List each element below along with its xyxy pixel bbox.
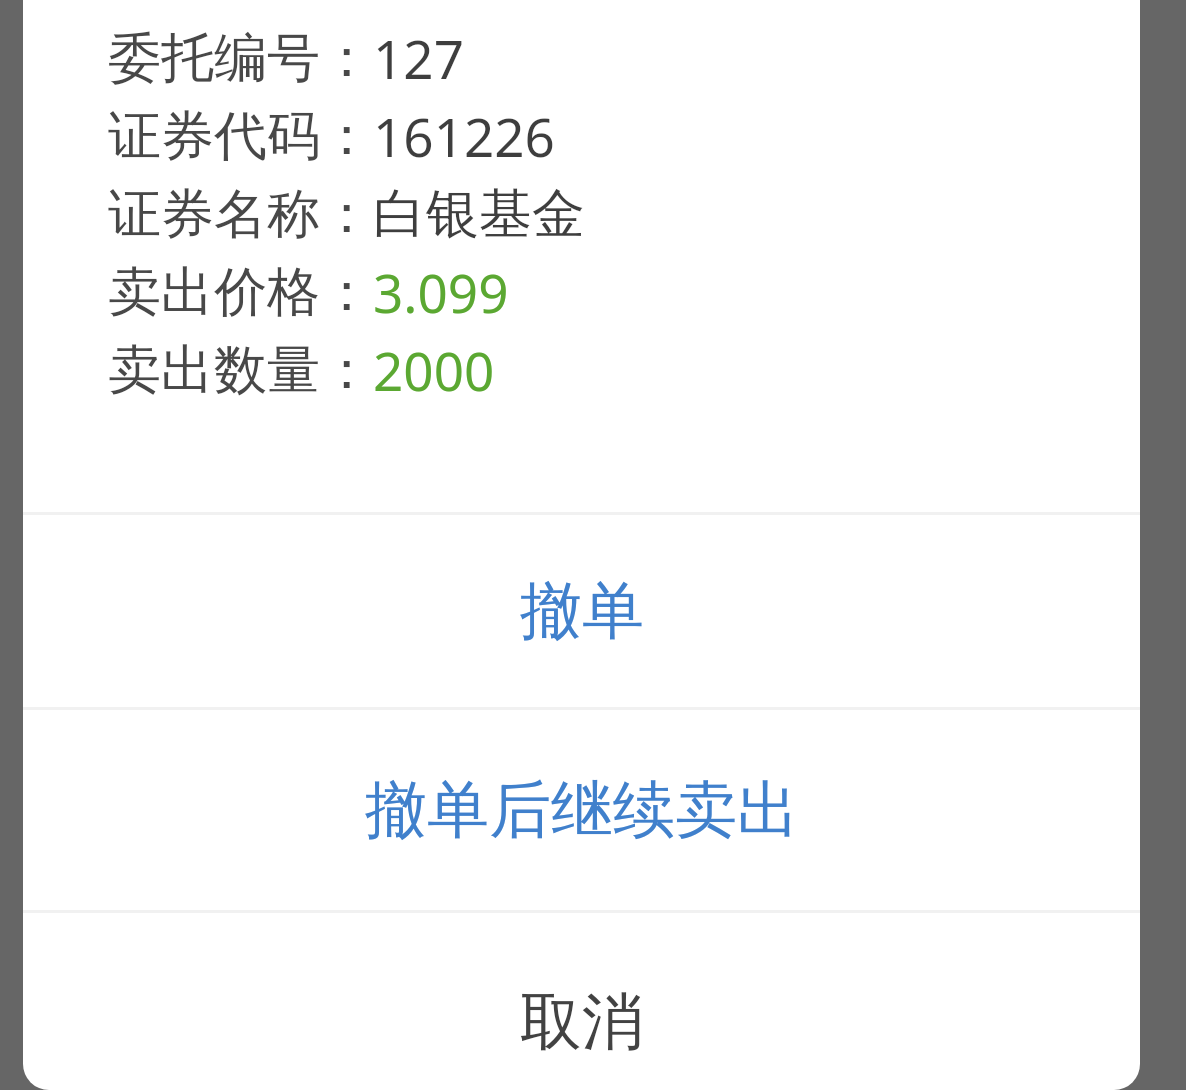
- staticText: 取消: [520, 983, 644, 1061]
- button[interactable]: 撤单后继续卖出: [23, 710, 1140, 910]
- staticText: 卖出数量：: [108, 337, 373, 404]
- staticText: 白银基金: [373, 181, 585, 248]
- staticText: 证券代码：: [108, 103, 373, 170]
- staticText: 撤单后继续卖出: [365, 771, 799, 849]
- staticText: 3.099: [373, 256, 509, 328]
- staticText: 证券名称：: [108, 181, 373, 248]
- staticText: 127: [373, 22, 464, 94]
- staticText: 撤单: [520, 572, 644, 650]
- staticText: 161226: [373, 100, 555, 172]
- staticText: 委托编号：: [108, 25, 373, 92]
- button[interactable]: 撤单: [23, 515, 1140, 707]
- staticText: 卖出价格：: [108, 259, 373, 326]
- button[interactable]: 取消: [23, 913, 1140, 1090]
- staticText: 2000: [373, 334, 495, 406]
